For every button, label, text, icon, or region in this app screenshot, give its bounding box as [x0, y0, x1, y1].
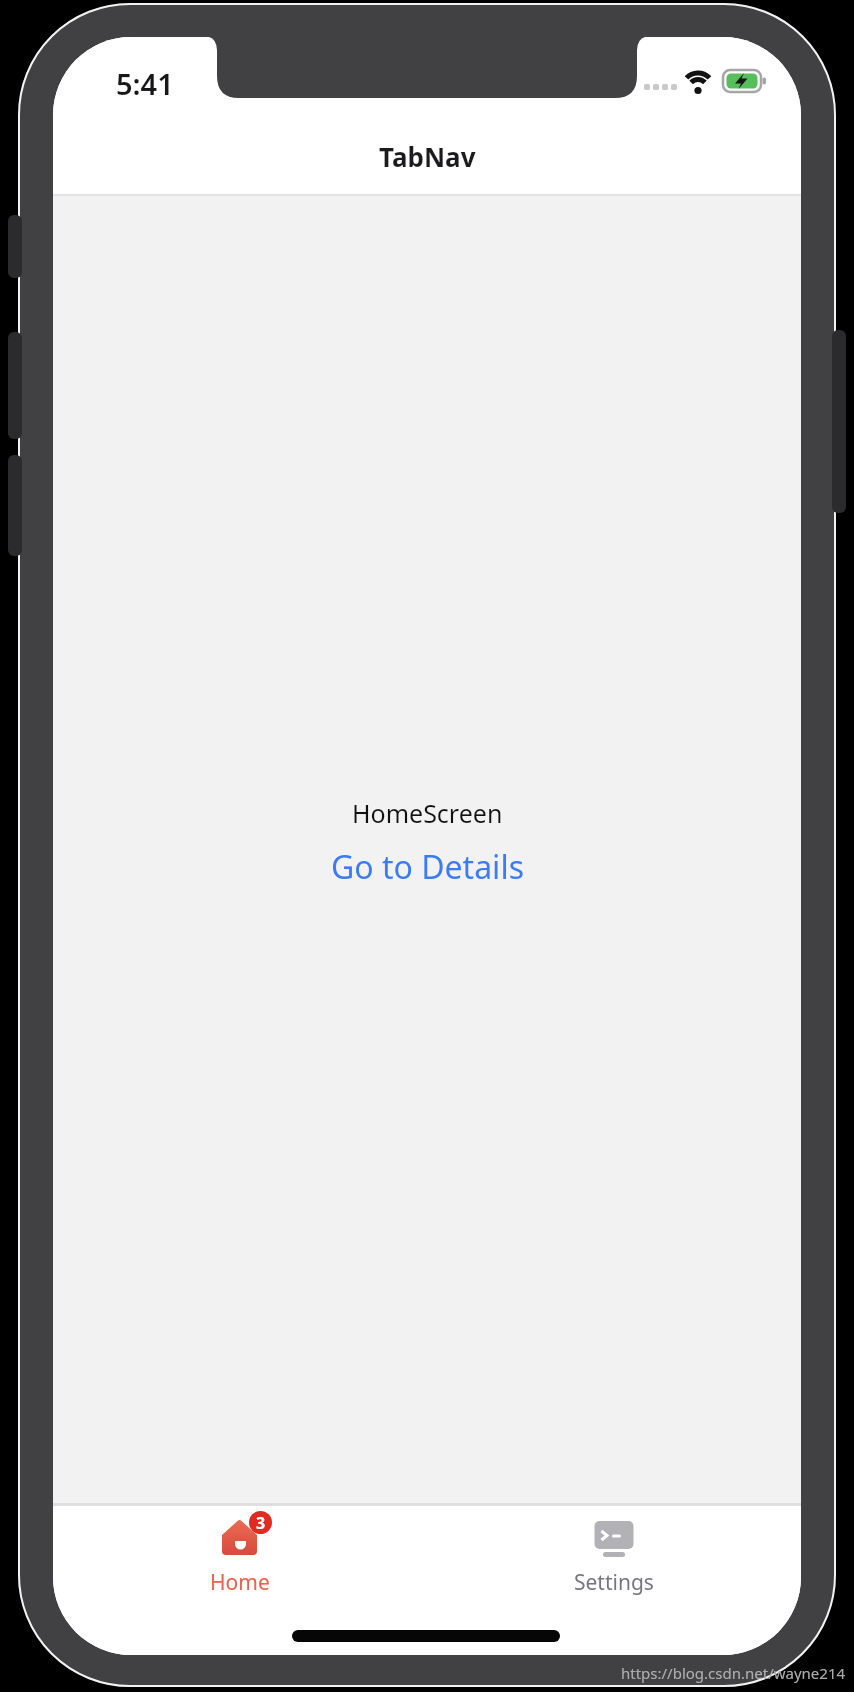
staticText: Home: [210, 1568, 270, 1597]
staticText: 5:41: [116, 64, 174, 103]
staticText: HomeScreen: [352, 796, 503, 830]
staticText: Go to Details: [331, 845, 524, 889]
staticText: TabNav: [379, 139, 476, 174]
staticText: https://blog.csdn.net/wayne214: [621, 1663, 846, 1683]
button[interactable]: Settings: [427, 1506, 801, 1655]
button[interactable]: 3: [53, 1506, 427, 1655]
button[interactable]: Go to Details: [331, 845, 524, 889]
staticText: Settings: [574, 1568, 654, 1597]
staticText: 3: [256, 1512, 266, 1534]
